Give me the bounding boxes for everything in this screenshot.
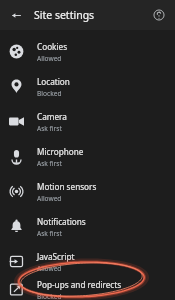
staticText: Camera bbox=[37, 111, 67, 122]
button[interactable]: Pop-ups and redirects bbox=[0, 279, 175, 300]
button[interactable]: Back bbox=[8, 7, 24, 23]
button[interactable]: Notifications bbox=[0, 209, 175, 244]
staticText: Pop-ups and redirects bbox=[37, 279, 122, 290]
button[interactable]: JavaScript bbox=[0, 244, 175, 279]
button[interactable]: Motion sensors bbox=[0, 174, 175, 209]
staticText: Site settings bbox=[34, 8, 95, 22]
staticText: Motion sensors bbox=[37, 181, 97, 192]
staticText: Allowed bbox=[37, 54, 62, 63]
staticText: JavaScript bbox=[37, 251, 75, 262]
staticText: Allowed bbox=[37, 264, 62, 273]
button[interactable]: Microphone bbox=[0, 139, 175, 174]
staticText: Ask first bbox=[37, 124, 62, 133]
button[interactable]: Location bbox=[0, 69, 175, 104]
staticText: Ask first bbox=[37, 159, 62, 168]
staticText: Cookies bbox=[37, 41, 68, 52]
staticText: Blocked bbox=[37, 89, 62, 98]
staticText: Location bbox=[37, 76, 70, 87]
button[interactable]: Camera bbox=[0, 104, 175, 139]
staticText: Microphone bbox=[37, 146, 84, 157]
staticText: Notifications bbox=[37, 216, 86, 227]
staticText: Ask first bbox=[37, 229, 62, 238]
staticText: Allowed bbox=[37, 194, 62, 203]
button[interactable]: Cookies bbox=[0, 34, 175, 69]
staticText: Blocked bbox=[37, 292, 62, 300]
button[interactable]: Help bbox=[150, 6, 168, 24]
